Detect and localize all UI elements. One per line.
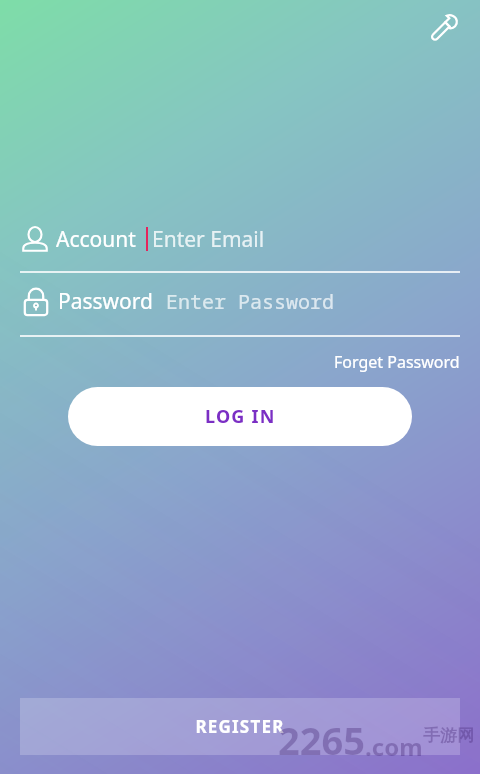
staticText: Forget Password bbox=[334, 351, 460, 373]
button[interactable]: Account bbox=[20, 214, 460, 264]
button[interactable]: Forget Password bbox=[334, 351, 460, 373]
staticText: Account bbox=[56, 225, 136, 254]
staticText: .com bbox=[365, 730, 423, 763]
staticText: 2265 bbox=[278, 714, 365, 766]
staticText: REGISTER bbox=[195, 715, 285, 738]
button[interactable]: LOG IN bbox=[68, 387, 412, 446]
button[interactable]: Password bbox=[20, 273, 460, 330]
button[interactable]: REGISTER bbox=[20, 698, 460, 755]
staticText: 手游网 bbox=[423, 725, 474, 746]
button[interactable]: Settings bbox=[422, 6, 466, 50]
staticText: Enter Password bbox=[166, 288, 334, 315]
staticText: Enter Email bbox=[152, 225, 265, 254]
staticText: Password bbox=[58, 287, 153, 316]
staticText: LOG IN bbox=[205, 404, 276, 429]
